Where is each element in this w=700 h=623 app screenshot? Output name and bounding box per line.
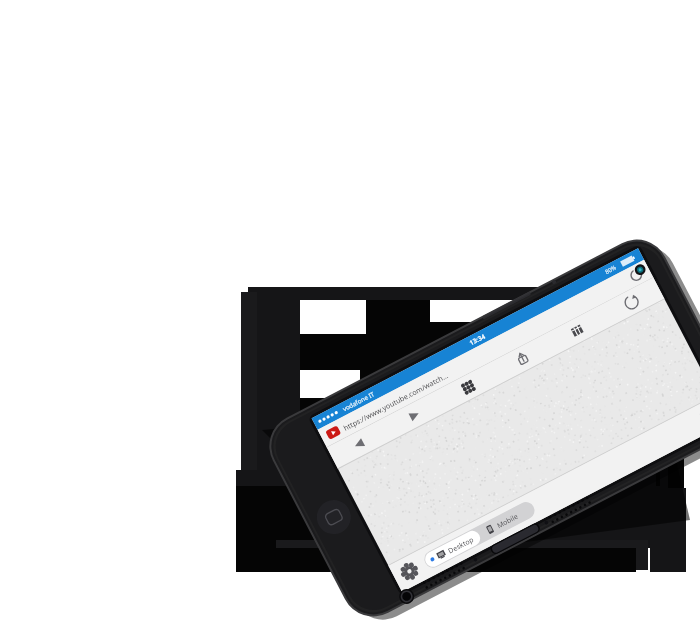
button[interactable]: iPhone showing mobile browser on YouTube: [0, 0, 700, 623]
